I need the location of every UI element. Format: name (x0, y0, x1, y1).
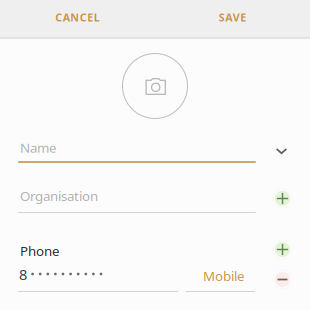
staticText: 8 (19, 265, 27, 284)
button[interactable]: Expand name fields (271, 139, 292, 163)
button[interactable]: SAVE (155, 0, 310, 36)
staticText: Mobile (203, 267, 245, 285)
button[interactable]: Remove field (272, 269, 292, 289)
button[interactable]: Add field (272, 239, 292, 259)
staticText: CANCEL (55, 10, 100, 24)
staticText: Phone (20, 242, 60, 260)
staticText: Name (20, 139, 57, 156)
staticText: Organisation (20, 187, 98, 205)
staticText: SAVE (219, 10, 246, 24)
button[interactable]: Add photo (122, 53, 188, 119)
button[interactable]: Add field (272, 188, 292, 208)
button[interactable]: CANCEL (0, 0, 155, 36)
button[interactable]: Mobile (189, 267, 258, 285)
